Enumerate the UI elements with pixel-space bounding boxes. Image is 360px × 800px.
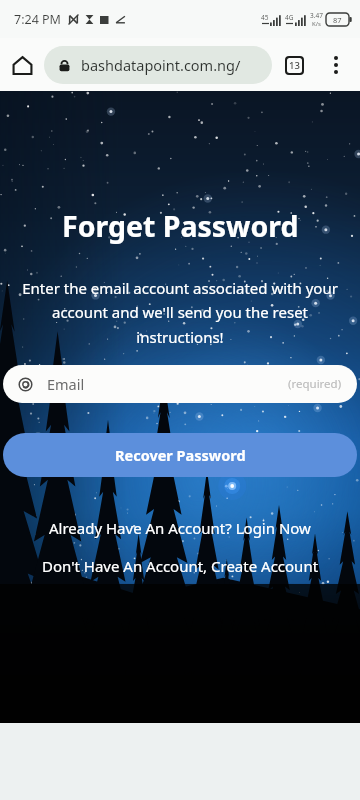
button[interactable]: Tabs: 13 open — [272, 43, 316, 87]
button[interactable]: Home — [0, 43, 44, 87]
staticText: K/s — [312, 20, 321, 28]
staticText: Already Have An Account? Login Now — [49, 518, 311, 538]
staticText: 4G — [285, 13, 294, 22]
button[interactable]: More options — [316, 45, 356, 85]
staticText: Recover Password — [115, 445, 246, 465]
staticText: Don't Have An Account, Create Account — [42, 556, 319, 576]
staticText: 87 — [333, 15, 342, 25]
staticText: bashdatapoint.com.ng/mobi — [81, 55, 258, 75]
button[interactable]: Recover Password — [3, 433, 357, 477]
staticText: 45 — [261, 13, 269, 22]
staticText: (required) — [288, 376, 342, 392]
button[interactable]: bashdatapoint.com.ng/mobi — [44, 46, 272, 84]
staticText: 13 — [289, 59, 300, 72]
button[interactable]: Don't Have An Account, Create Account — [0, 552, 360, 580]
staticText: Email — [47, 374, 85, 394]
staticText: Enter the email account associated with … — [14, 278, 346, 348]
staticText: 3.47 — [310, 11, 323, 20]
staticText: 7:24 PM — [14, 11, 61, 28]
button[interactable]: Email — [3, 365, 357, 403]
staticText: Forget Password — [62, 207, 299, 246]
button[interactable]: Already Have An Account? Login Now — [0, 514, 360, 542]
